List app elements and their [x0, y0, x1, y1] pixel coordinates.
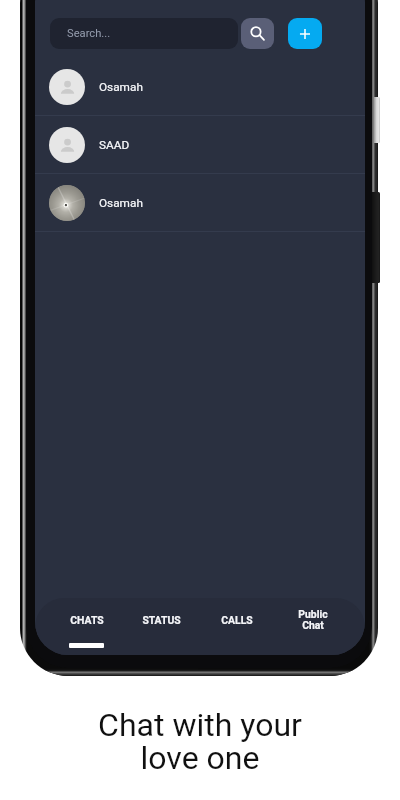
staticText: CALLS	[221, 614, 253, 626]
button[interactable]: Public Chat	[275, 598, 351, 655]
staticText: Public Chat	[298, 608, 328, 632]
button[interactable]: SAAD	[35, 116, 365, 173]
staticText: Chat with your love one	[98, 706, 302, 777]
staticText: Osamah	[99, 196, 143, 210]
button[interactable]: STATUS	[124, 598, 199, 655]
staticText: CHATS	[70, 614, 104, 626]
button[interactable]: Search	[241, 18, 274, 49]
button[interactable]: Osamah	[35, 174, 365, 231]
button[interactable]: CHATS	[49, 598, 124, 655]
button[interactable]: Osamah	[35, 58, 365, 115]
staticText: Search...	[67, 27, 111, 40]
button[interactable]: Search...	[50, 18, 238, 49]
button[interactable]: CALLS	[199, 598, 275, 655]
button[interactable]: New chat	[288, 18, 322, 49]
staticText: SAAD	[99, 138, 130, 152]
staticText: Osamah	[99, 80, 143, 94]
staticText: STATUS	[142, 614, 181, 626]
